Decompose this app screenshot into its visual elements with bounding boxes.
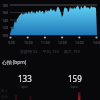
staticText: 100 [2,33,9,38]
staticText: 14:00 [93,40,100,45]
staticText: 心拍 (bpm) [2,59,27,66]
staticText: 120 [2,25,9,30]
staticText: 13:00 [75,40,84,45]
staticText: 140 [2,18,9,23]
staticText: 安静 [1,95,8,99]
staticText: 安静時 52 · 平均 133 · 最大 159 [20,49,80,54]
staticText: 160 [2,10,9,15]
staticText: 180 [2,3,9,8]
button[interactable]: 159 [50,73,100,89]
staticText: bpm [21,84,29,89]
staticText: 159 [68,73,82,84]
staticText: 10:00 [24,40,33,45]
staticText: 133 [18,73,32,84]
staticText: 9:00 [8,40,15,45]
staticText: 11:00 [41,40,50,45]
staticText: 最大 [1,89,8,93]
button[interactable]: 133 [0,73,50,89]
staticText: bpm [71,84,79,89]
staticText: 12:00 [58,40,67,45]
